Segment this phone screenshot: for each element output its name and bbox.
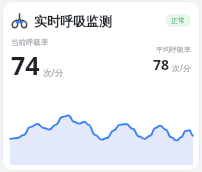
staticText: 74: [11, 48, 40, 82]
other: Lungs: [11, 12, 28, 29]
button[interactable]: Lungs: [2, 1, 200, 171]
staticText: 实时呼吸监测: [34, 13, 112, 29]
staticText: 正常: [171, 16, 185, 25]
button[interactable]: 正常: [165, 14, 191, 27]
staticText: 78: [153, 55, 170, 74]
staticText: 平均呼吸率: [156, 45, 191, 54]
staticText: 次/分: [43, 67, 64, 79]
staticText: 次/分: [172, 62, 191, 73]
staticText: 当前呼吸率: [11, 38, 49, 47]
